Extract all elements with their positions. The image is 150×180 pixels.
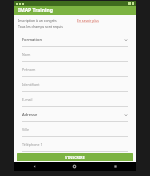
staticText: Ville [22,127,29,132]
button[interactable]: Nom [18,47,132,62]
staticText: Formation [22,37,124,42]
staticText: Adresse [22,112,124,117]
button[interactable]: Back [14,162,54,171]
staticText: Prénom [22,67,36,72]
button[interactable]: Home [54,162,95,171]
staticText: Inscription à un congrès [18,18,57,23]
staticText: S'INSCRIRE [65,155,85,160]
button[interactable]: S'INSCRIRE [17,153,133,161]
staticText: Tous les champs sont requis [18,24,63,29]
staticText: Nom [22,52,31,57]
staticText: IMAP Training [18,7,53,14]
button[interactable]: Téléphone 1 [18,137,132,152]
button[interactable]: Recent apps [95,162,136,171]
staticText: En savoir plus [77,18,99,23]
button[interactable]: Ville [18,122,132,137]
button[interactable]: Adresse [18,107,132,122]
button[interactable]: IMAP Training [14,6,136,15]
staticText: Téléphone 1 [22,142,43,147]
staticText: Identifiant [22,82,40,87]
button[interactable]: En savoir plus [75,18,101,23]
staticText: E-mail [22,97,33,102]
button[interactable]: Identifiant [18,77,132,92]
button[interactable]: Formation [18,32,132,47]
button[interactable]: E-mail [18,92,132,107]
button[interactable]: Prénom [18,62,132,77]
